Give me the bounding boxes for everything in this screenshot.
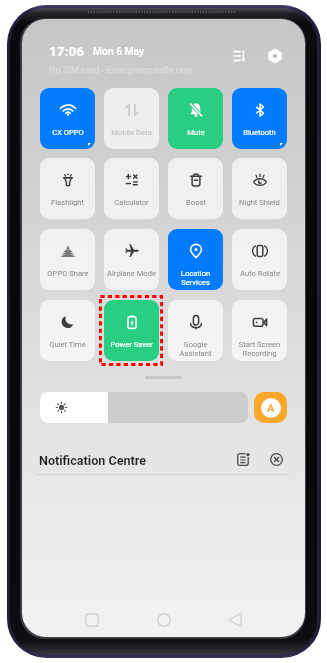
staticText: Google Assistant	[168, 340, 223, 358]
button[interactable]: Brightness	[40, 392, 248, 423]
staticText: CX OPPO	[52, 128, 84, 137]
button[interactable]: Settings	[265, 46, 285, 66]
staticText: No SIM card - Emergency calls only	[49, 64, 193, 75]
staticText: A	[267, 402, 275, 415]
staticText: Flashlight	[51, 198, 84, 207]
button[interactable]: Boost	[168, 158, 223, 219]
staticText: OPPO Share	[47, 269, 89, 278]
staticText: Boost	[186, 198, 206, 207]
staticText: Calculator	[114, 198, 149, 207]
staticText: Power Saver	[110, 340, 153, 349]
button[interactable]: Flashlight	[40, 158, 95, 219]
staticText: 17:06	[49, 43, 85, 59]
button[interactable]: Clear all notifications	[267, 450, 286, 469]
button[interactable]: Night Shield	[232, 158, 287, 219]
button[interactable]: Auto brightness	[254, 392, 287, 423]
staticText: Mute	[187, 128, 205, 137]
button[interactable]: Start Screen Recording	[232, 300, 287, 361]
button[interactable]: Back	[221, 606, 249, 634]
staticText: Notification Centre	[39, 453, 147, 468]
staticText: Mon 6 May	[93, 45, 145, 57]
staticText: Location Services	[168, 269, 223, 287]
button[interactable]: Edit quick settings	[229, 46, 249, 66]
staticText: Mobile Data	[111, 128, 152, 137]
staticText: Bluetooth	[243, 128, 276, 137]
button[interactable]: Auto Rotate	[232, 229, 287, 290]
button[interactable]: Home	[150, 606, 178, 634]
staticText: Quiet Time	[49, 340, 86, 349]
button[interactable]: Recents	[78, 606, 106, 634]
button[interactable]: Power Saver	[104, 300, 159, 361]
button[interactable]: Mobile Data	[104, 88, 159, 149]
button[interactable]: Bluetooth	[232, 88, 287, 149]
staticText: Auto Rotate	[240, 269, 280, 278]
staticText: Airplane Mode	[107, 269, 156, 278]
button[interactable]: Quiet Time	[40, 300, 95, 361]
button[interactable]: Google Assistant	[168, 300, 223, 361]
button[interactable]: Location Services	[168, 229, 223, 290]
staticText: Start Screen Recording	[232, 340, 287, 358]
button[interactable]: OPPO Share	[40, 229, 95, 290]
button[interactable]: Calculator	[104, 158, 159, 219]
button[interactable]: Notification settings	[234, 450, 253, 469]
button[interactable]: Airplane Mode	[104, 229, 159, 290]
button[interactable]: Mute	[168, 88, 223, 149]
staticText: Night Shield	[239, 198, 280, 207]
button[interactable]: CX OPPO	[40, 88, 95, 149]
